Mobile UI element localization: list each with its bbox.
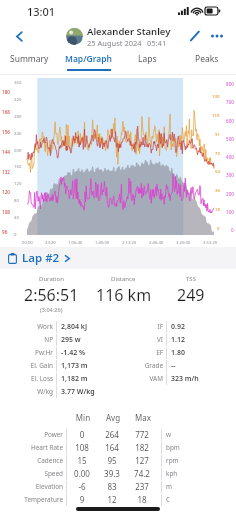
staticText: -- — [171, 361, 176, 371]
staticText: Elevation — [18, 482, 63, 491]
staticText: Pw:Hr — [8, 348, 53, 357]
staticText: 108 — [67, 442, 97, 453]
staticText: 40 — [14, 214, 19, 220]
staticText: 2:56:51 — [24, 284, 79, 306]
staticText: 12 — [97, 494, 127, 505]
staticText: 120 — [14, 180, 22, 186]
staticText: Avg — [98, 412, 128, 423]
staticText: -1.42 % — [61, 348, 86, 358]
staticText: 0.92 — [171, 322, 185, 332]
staticText: 360 — [14, 79, 22, 85]
staticText: 1,182 m — [61, 374, 88, 384]
staticText: 0 — [67, 429, 97, 440]
staticText: 3.77 W/kg — [61, 387, 95, 397]
staticText: Distance — [111, 275, 136, 283]
staticText: 9 — [67, 494, 97, 505]
staticText: (3:04:26) — [40, 306, 63, 314]
staticText: 156 — [2, 129, 10, 135]
staticText: Summary — [10, 53, 49, 65]
staticText: 73 — [215, 150, 220, 156]
staticText: 100 — [226, 209, 234, 215]
staticText: 96 — [2, 229, 8, 235]
staticText: 300 — [226, 172, 234, 178]
staticText: 295 w — [61, 335, 81, 345]
staticText: W/kg — [8, 387, 53, 396]
staticText: El. Gain — [8, 361, 53, 370]
staticText: Grade — [118, 361, 163, 370]
staticText: 600 — [226, 118, 234, 124]
staticText: 25 August 2024 — [87, 38, 142, 48]
staticText: Max — [128, 412, 158, 423]
staticText: w — [166, 430, 172, 439]
staticText: 320 — [14, 96, 22, 102]
button[interactable]: More options — [206, 25, 228, 47]
staticText: 2,804 kJ — [61, 322, 88, 332]
staticText: 237 — [127, 481, 157, 492]
staticText: 168 — [2, 109, 10, 115]
staticText: 772 — [127, 429, 157, 440]
staticText: EF — [118, 348, 163, 357]
staticText: 39.3 — [97, 468, 127, 479]
staticText: Lap #2 — [22, 250, 60, 266]
staticText: El. Loss — [8, 374, 53, 383]
staticText: 13:01 — [27, 4, 56, 19]
staticText: 164 — [97, 442, 127, 453]
staticText: 0.00 — [67, 468, 97, 479]
staticText: 116 km — [96, 284, 152, 306]
staticText: rpm — [166, 456, 179, 465]
button[interactable]: Peaks — [177, 50, 236, 74]
staticText: m — [166, 482, 172, 491]
staticText: 500 — [226, 136, 234, 142]
staticText: 15 — [67, 455, 97, 466]
staticText: 700 — [226, 99, 234, 105]
staticText: 0 — [231, 227, 234, 233]
staticText: 130 — [212, 93, 220, 99]
staticText: 74.2 — [127, 468, 157, 479]
staticText: 80 — [14, 197, 19, 203]
staticText: 180 — [2, 89, 10, 95]
staticText: Map/Graph — [65, 53, 112, 65]
staticText: 0 — [217, 225, 220, 231]
staticText: Power — [18, 430, 63, 439]
staticText: 3:20:00 — [176, 240, 191, 246]
staticText: bpm — [166, 443, 180, 452]
button[interactable]: Map/Graph — [59, 50, 118, 74]
staticText: NP — [8, 335, 53, 344]
staticText: 264 — [97, 429, 127, 440]
staticText: IF — [118, 322, 163, 331]
staticText: TSS — [186, 275, 196, 283]
staticText: 91 — [215, 131, 220, 137]
staticText: 144 — [2, 149, 10, 155]
button[interactable]: Laps — [118, 50, 177, 74]
button[interactable]: Edit — [184, 25, 206, 47]
staticText: 132 — [2, 169, 10, 175]
staticText: 00:00 — [22, 240, 33, 246]
staticText: 110 — [212, 112, 220, 118]
staticText: 1:40:00 — [95, 240, 110, 246]
staticText: Min — [68, 412, 98, 423]
staticText: 3:53:20 — [203, 240, 218, 246]
staticText: Work — [8, 322, 53, 331]
staticText: 1:06:40 — [68, 240, 83, 246]
staticText: 2:46:40 — [149, 240, 164, 246]
staticText: Temperature — [18, 495, 63, 504]
button[interactable]: Lap #2 — [0, 247, 236, 269]
staticText: 200 — [226, 191, 234, 197]
button[interactable]: Summary — [0, 50, 59, 74]
staticText: 05:41 — [147, 38, 167, 48]
staticText: 160 — [14, 163, 22, 169]
staticText: 95 — [97, 455, 127, 466]
staticText: Cadence — [18, 456, 63, 465]
staticText: 1.80 — [171, 348, 185, 358]
staticText: 280 — [14, 113, 22, 119]
staticText: Alexander Stanley — [87, 25, 171, 38]
staticText: C — [166, 495, 171, 504]
staticText: VAM — [118, 374, 163, 383]
staticText: 249 — [177, 284, 205, 306]
button[interactable]: Back — [6, 23, 32, 49]
staticText: 127 — [127, 455, 157, 466]
staticText: -6 — [67, 481, 97, 492]
staticText: Speed — [18, 469, 63, 478]
staticText: 800 — [226, 81, 234, 87]
staticText: 36 — [215, 187, 220, 193]
